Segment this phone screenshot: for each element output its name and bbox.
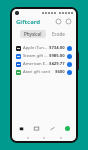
button[interactable]: Home [14, 122, 28, 134]
button[interactable]: Apple iTunes gift [12, 44, 76, 52]
button[interactable]: American Express gift [12, 60, 76, 68]
staticText: Steam gift card [23, 53, 49, 59]
button[interactable]: Physical [20, 30, 46, 38]
staticText: American Express gift [23, 61, 49, 67]
staticText: Ecode [52, 31, 65, 37]
button[interactable]: Cards [29, 122, 43, 134]
button[interactable]: Stats [45, 122, 59, 134]
button[interactable]: Search [55, 18, 62, 25]
other: Options [67, 46, 72, 51]
staticText: Physical [24, 31, 42, 37]
staticText: $985.00 [49, 53, 65, 59]
staticText: Giftcard [16, 18, 41, 26]
staticText: $600 [55, 69, 65, 75]
other: Options [67, 62, 72, 67]
other: Options [67, 54, 72, 59]
button[interactable]: Ecode [48, 30, 69, 38]
button[interactable]: Profile [60, 122, 74, 134]
staticText: $734.00 [49, 45, 65, 51]
staticText: Apple iTunes gift [23, 45, 49, 51]
staticText: Atari gift card [23, 69, 55, 75]
other: Options [67, 70, 72, 75]
button[interactable]: Steam gift card [12, 52, 76, 60]
staticText: $429.77 [49, 61, 65, 67]
button[interactable]: Atari gift card [12, 68, 76, 76]
button[interactable]: Notifications [65, 18, 72, 25]
